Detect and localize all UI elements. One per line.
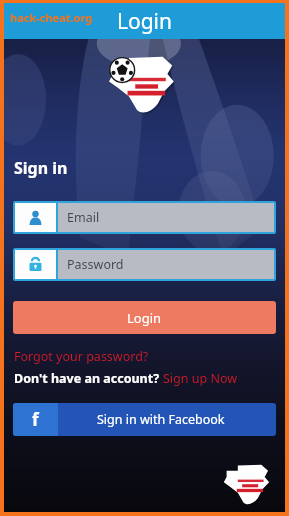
button[interactable]: Login <box>13 301 276 334</box>
other: Email <box>28 210 43 225</box>
button[interactable]: f <box>13 403 276 436</box>
other: Password <box>28 257 43 272</box>
button[interactable]: Sign up Now <box>163 370 238 387</box>
staticText: Login <box>117 7 173 36</box>
staticText: Forgot your password? <box>14 348 149 365</box>
staticText: Sign in <box>14 157 68 179</box>
button[interactable]: Forgot your password? <box>14 348 149 365</box>
staticText: hack-cheat.org <box>10 10 93 25</box>
staticText: f <box>32 408 39 431</box>
staticText: Password <box>67 256 124 273</box>
staticText: Login <box>127 309 162 327</box>
staticText: Don't have an account? <box>14 370 163 387</box>
button[interactable]: Password <box>15 250 274 279</box>
staticText: Sign up Now <box>163 370 238 387</box>
button[interactable]: Email <box>15 203 274 232</box>
staticText: Sign in with Facebook <box>97 411 225 428</box>
staticText: Email <box>67 209 100 226</box>
